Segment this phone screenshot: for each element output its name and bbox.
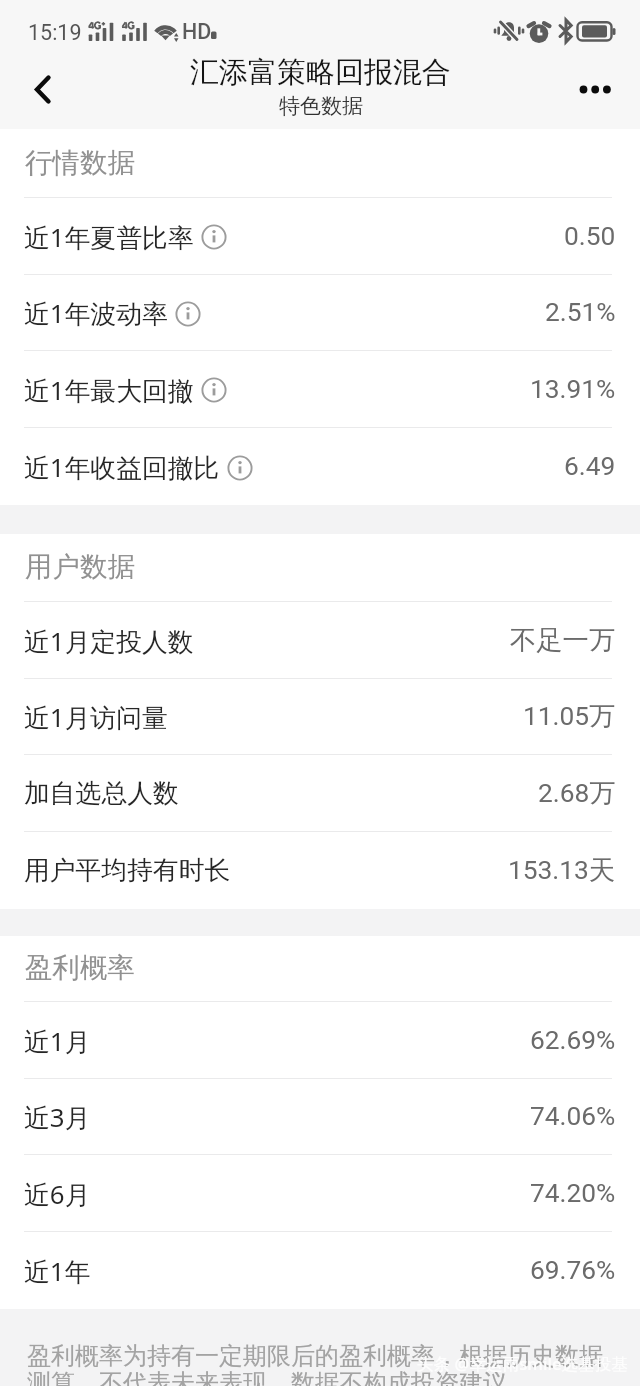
- staticText: 近3月: [24, 1099, 91, 1134]
- staticText: 头条 @幸运雨smile选基投基: [417, 1352, 628, 1375]
- staticText: 近1月: [24, 1023, 91, 1058]
- button[interactable]: 近1年收益回撤比: [0, 428, 640, 505]
- staticText: 74.06%: [530, 1101, 616, 1132]
- button[interactable]: 近1年夏普比率: [0, 198, 640, 274]
- staticText: 13.91%: [530, 374, 616, 405]
- button[interactable]: 近1年波动率: [0, 275, 640, 350]
- button[interactable]: 近1年: [0, 1232, 640, 1309]
- staticText: 近1月定投人数: [24, 623, 194, 658]
- staticText: 74.20%: [530, 1178, 616, 1209]
- button[interactable]: More options: [580, 61, 640, 121]
- button[interactable]: 近6月: [0, 1155, 640, 1231]
- staticText: 15:19: [28, 20, 82, 45]
- staticText: 汇添富策略回报混合: [190, 54, 451, 91]
- staticText: 6.49: [564, 451, 616, 482]
- staticText: 行情数据: [25, 146, 135, 181]
- staticText: 近1年波动率: [24, 295, 168, 330]
- staticText: 加自选总人数: [24, 777, 179, 810]
- button[interactable]: Back: [0, 61, 60, 121]
- staticText: 近6月: [24, 1176, 91, 1211]
- staticText: 11.05万: [523, 700, 616, 733]
- staticText: 盈利概率为持有一定期限后的盈利概率，根据历史数据测算，不代表未来表现。数据不构成…: [27, 1341, 620, 1386]
- staticText: 用户数据: [25, 550, 135, 585]
- staticText: 0.50: [564, 221, 616, 252]
- staticText: 盈利概率: [25, 951, 135, 986]
- staticText: 近1年收益回撤比: [24, 449, 220, 484]
- button[interactable]: 加自选总人数: [0, 755, 640, 831]
- button[interactable]: 近1年最大回撤: [0, 351, 640, 427]
- staticText: 用户平均持有时长: [24, 854, 231, 887]
- staticText: HD: [182, 19, 212, 44]
- button[interactable]: 用户平均持有时长: [0, 832, 640, 909]
- button[interactable]: 近1月: [0, 1002, 640, 1078]
- staticText: 特色数据: [279, 93, 363, 119]
- staticText: 近1月访问量: [24, 699, 168, 734]
- staticText: 近1年夏普比率: [24, 219, 194, 254]
- staticText: 2.68万: [538, 777, 616, 810]
- staticText: 近1年: [24, 1253, 91, 1288]
- staticText: 69.76%: [530, 1255, 616, 1286]
- button[interactable]: 近1月访问量: [0, 679, 640, 754]
- staticText: 62.69%: [530, 1025, 616, 1056]
- staticText: 2.51%: [545, 297, 616, 328]
- button[interactable]: 近3月: [0, 1079, 640, 1154]
- button[interactable]: 近1月定投人数: [0, 602, 640, 678]
- staticText: 153.13天: [508, 854, 616, 887]
- staticText: 不足一万: [510, 624, 616, 657]
- staticText: 近1年最大回撤: [24, 372, 194, 407]
